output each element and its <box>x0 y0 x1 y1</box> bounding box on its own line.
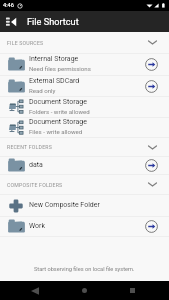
staticText: External SDCard <box>29 77 80 85</box>
staticText: New Composite Folder <box>29 201 100 209</box>
staticText: File Shortcut <box>27 16 79 27</box>
staticText: Files - write allowed <box>29 128 83 135</box>
button[interactable]: Open <box>141 76 169 96</box>
staticText: Work <box>29 222 46 230</box>
staticText: Start observing files on local file syst… <box>34 266 135 273</box>
button[interactable]: COMPOSITE FOLDERS <box>0 175 169 194</box>
button[interactable]: Back <box>15 281 55 300</box>
button[interactable]: FILE SOURCES <box>0 32 169 53</box>
staticText: Internal Storage <box>29 55 79 63</box>
staticText: Need files permissions <box>29 65 91 72</box>
button[interactable]: External SDCard <box>0 76 169 96</box>
staticText: RECENT FOLDERS <box>7 144 143 150</box>
button[interactable]: Open <box>141 217 169 236</box>
button[interactable]: Document Storage <box>0 118 169 137</box>
button[interactable]: Internal Storage <box>0 54 169 75</box>
button[interactable]: RECENT FOLDERS <box>0 138 169 156</box>
staticText: COMPOSITE FOLDERS <box>7 182 143 188</box>
button[interactable]: Open <box>141 54 169 75</box>
staticText: 4:46 <box>3 2 14 9</box>
button[interactable]: New Composite Folder <box>0 195 169 216</box>
button[interactable]: Work <box>0 217 169 236</box>
button[interactable]: Recent apps <box>112 281 152 300</box>
staticText: FILE SOURCES <box>7 40 143 46</box>
button[interactable]: Document Storage <box>0 97 169 117</box>
button[interactable]: Navigate up <box>0 11 22 32</box>
button[interactable]: Open <box>141 157 169 174</box>
button[interactable]: Home <box>64 281 104 300</box>
staticText: Document Storage <box>29 98 87 106</box>
staticText: Folders - write allowed <box>29 108 90 115</box>
staticText: Document Storage <box>29 118 87 126</box>
staticText: Read only <box>29 87 56 94</box>
button[interactable]: data <box>0 157 169 174</box>
staticText: data <box>29 161 43 169</box>
